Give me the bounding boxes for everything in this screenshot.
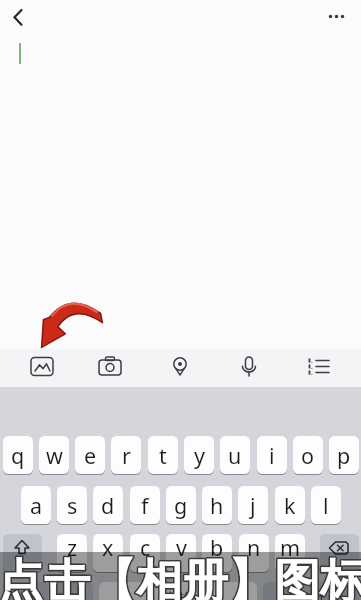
button[interactable] [158, 349, 202, 387]
staticText: 点击【相册】图标 [0, 553, 361, 600]
staticText: 空格 [164, 590, 192, 600]
button[interactable] [4, 4, 34, 32]
button[interactable] [88, 349, 132, 387]
button[interactable]: s [57, 486, 87, 524]
button[interactable]: o [293, 436, 323, 474]
staticText: n [247, 533, 261, 562]
button[interactable] [297, 349, 341, 387]
button[interactable] [54, 582, 93, 600]
button[interactable]: l [311, 486, 341, 524]
button[interactable]: d [93, 486, 123, 524]
button[interactable]: 空格 [99, 582, 257, 600]
staticText: d [101, 491, 115, 520]
staticText: k [284, 491, 296, 520]
staticText: s [67, 491, 78, 520]
staticText: r [122, 441, 131, 470]
staticText: i [269, 441, 275, 470]
button[interactable]: 123 [3, 582, 48, 600]
staticText: a [30, 491, 43, 520]
button[interactable]: p [329, 436, 359, 474]
button[interactable] [320, 534, 359, 572]
button[interactable] [322, 4, 354, 30]
button[interactable]: f [130, 486, 160, 524]
button[interactable]: q [3, 436, 33, 474]
button[interactable] [3, 534, 42, 572]
button[interactable]: x [93, 534, 123, 572]
button[interactable]: e [75, 436, 105, 474]
staticText: z [67, 533, 78, 562]
staticText: l [323, 491, 329, 520]
staticText: b [210, 533, 224, 562]
button[interactable]: b [202, 534, 232, 572]
button[interactable]: j [238, 486, 268, 524]
button[interactable]: z [57, 534, 87, 572]
staticText: g [174, 491, 188, 520]
staticText: 换行 [297, 590, 325, 600]
staticText: o [301, 441, 315, 470]
staticText: w [46, 441, 63, 470]
staticText: u [228, 441, 242, 470]
staticText: t [159, 441, 167, 470]
staticText: y [194, 441, 205, 470]
button[interactable]: c [130, 534, 160, 572]
button[interactable]: y [184, 436, 214, 474]
staticText: j [250, 491, 256, 520]
staticText: c [140, 533, 151, 562]
button[interactable]: i [257, 436, 287, 474]
button[interactable] [227, 349, 271, 387]
staticText: h [210, 491, 224, 520]
button[interactable]: r [111, 436, 141, 474]
staticText: v [176, 533, 187, 562]
button[interactable] [20, 349, 64, 387]
button[interactable]: w [39, 436, 69, 474]
staticText: 点击【相册】图标 [0, 553, 361, 600]
button[interactable]: m [275, 534, 305, 572]
staticText: x [102, 533, 114, 562]
button[interactable]: 换行 [263, 582, 359, 600]
staticText: m [280, 533, 301, 562]
button[interactable]: a [21, 486, 51, 524]
button[interactable]: v [166, 534, 196, 572]
staticText: p [337, 441, 351, 470]
button[interactable]: k [275, 486, 305, 524]
staticText: 123 [16, 590, 36, 600]
staticText: f [141, 491, 149, 520]
button[interactable]: h [202, 486, 232, 524]
button[interactable]: g [166, 486, 196, 524]
staticText: q [11, 441, 25, 470]
button[interactable]: u [220, 436, 250, 474]
button[interactable]: n [239, 534, 269, 572]
button[interactable]: t [148, 436, 178, 474]
staticText: e [84, 441, 97, 470]
